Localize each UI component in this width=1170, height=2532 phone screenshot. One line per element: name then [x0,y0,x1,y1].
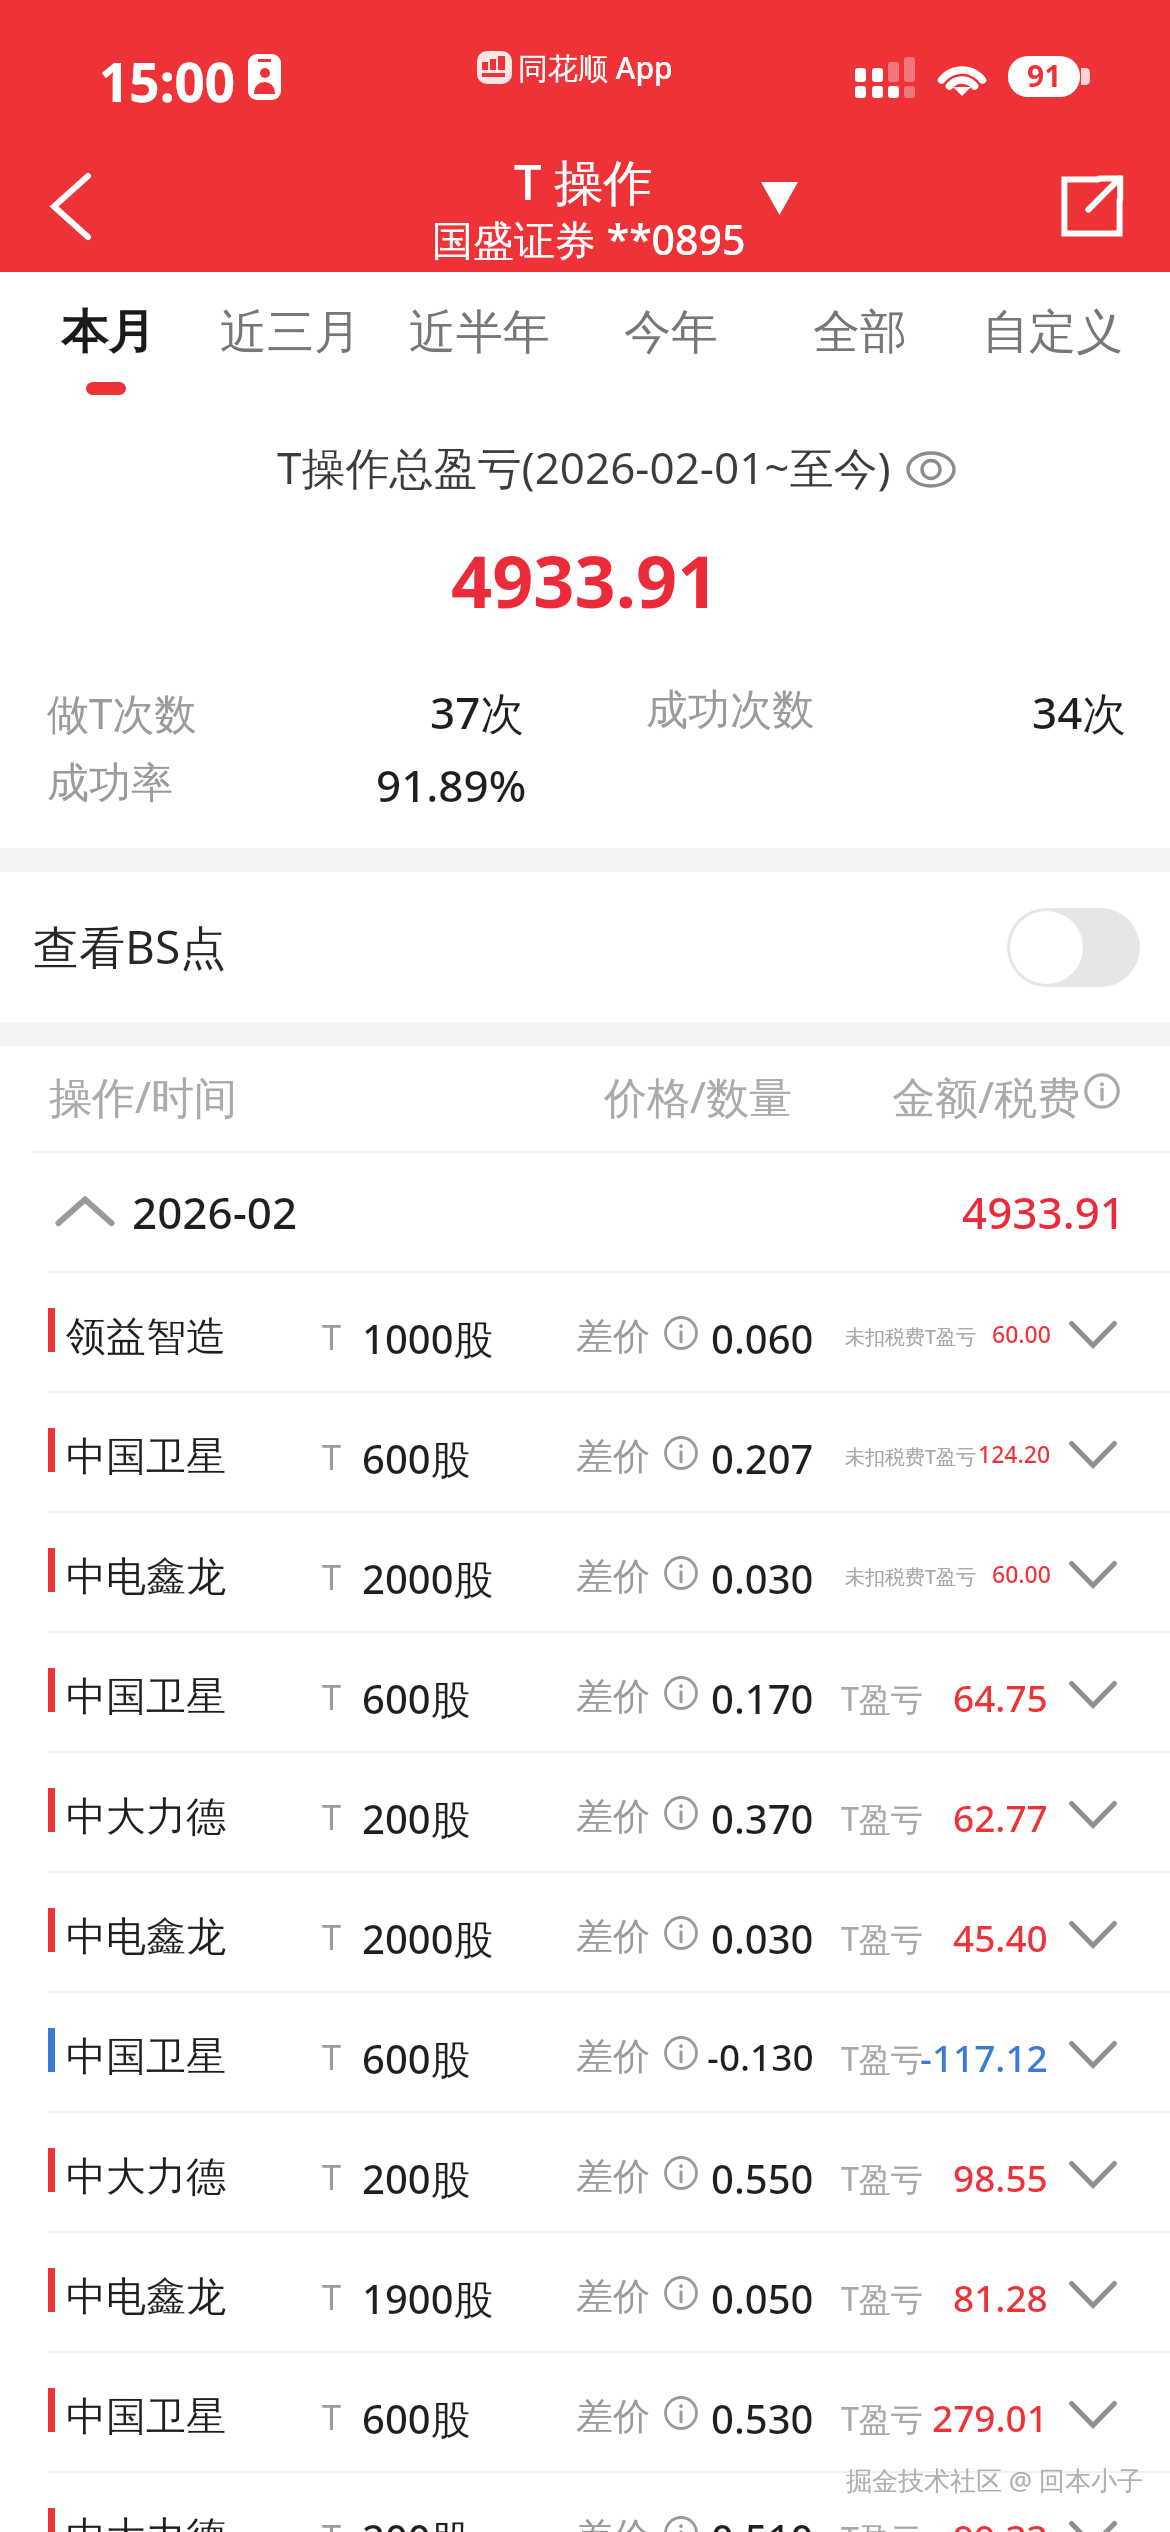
button[interactable]: T 操作 [420,140,810,252]
button[interactable]: 本月 [41,272,175,384]
staticText: 掘金技术社区 @ 回本小子 [846,2462,1143,2498]
staticText: 差价 [576,1673,650,1720]
staticText: 中电鑫龙 [66,2271,226,2321]
staticText: 近三月 [220,303,361,362]
staticText: T [322,1554,341,1600]
staticText: 差价 [576,1913,650,1960]
staticText: 15:00 [99,45,236,117]
staticText: 中大力德 [66,2151,226,2201]
staticText: 国盛证券 **0895 [432,211,746,267]
button[interactable]: 中电鑫龙 [0,1872,1170,1992]
button[interactable]: 中国卫星 [0,1632,1170,1752]
staticText: 中大力德 [66,2511,226,2532]
staticText: 37次 [430,682,525,742]
staticText: 2026-02 [132,1182,298,1242]
button[interactable]: 查看BS点 [0,872,1170,1022]
staticText: -0.130 [707,2031,814,2081]
staticText: 4933.91 [451,531,719,629]
button[interactable]: Share [1040,158,1144,254]
button[interactable]: 中国卫星 [0,1392,1170,1512]
button[interactable]: Fee info [1064,1053,1140,1129]
staticText: 0.170 [711,1671,814,1725]
staticText: 中大力德 [66,1791,226,1841]
staticText: 查看BS点 [33,915,227,978]
staticText: 未扣税费T盈亏 [845,1443,977,1470]
staticText: T盈亏 [841,1797,923,1841]
staticText: 金额/税费 [892,1067,1080,1126]
staticText: T盈亏 [841,1917,923,1961]
button[interactable]: 中大力德 [0,1752,1170,1872]
staticText: 差价 [576,2513,650,2532]
button[interactable]: 近半年 [389,272,570,384]
staticText: 0.030 [711,1551,814,1605]
staticText: 差价 [576,2033,650,2080]
staticText: 差价 [576,2273,650,2320]
staticText: 81.28 [953,2272,1048,2322]
button[interactable]: 中大力德 [0,2112,1170,2232]
staticText: T盈亏 [841,2277,923,2321]
button[interactable]: 中电鑫龙 [0,1512,1170,1632]
staticText: 近半年 [409,303,550,362]
staticText: 0.207 [711,1431,814,1485]
staticText: 0.370 [711,1791,814,1845]
staticText: 领益智造 [66,1311,226,1361]
staticText: 91 [1027,56,1062,96]
staticText: T [322,2514,341,2532]
staticText: 差价 [576,1433,650,1480]
staticText: 2000股 [362,1911,494,1966]
staticText: T [322,2274,341,2320]
staticText: 200股 [362,2151,471,2206]
staticText: 成功率 [47,757,173,810]
staticText: 64.75 [953,1672,1048,1722]
staticText: T [322,1314,341,1360]
button[interactable]: 近三月 [200,272,381,384]
button[interactable]: Back [16,158,126,254]
staticText: T [322,1794,341,1840]
button[interactable]: Toggle amount visibility [890,429,972,509]
button[interactable]: 全部 [793,272,927,384]
staticText: 今年 [624,303,718,362]
staticText: 中电鑫龙 [66,1551,226,1601]
staticText: 0.530 [711,2391,814,2445]
staticText: 本月 [61,303,155,362]
staticText: 1000股 [362,1311,494,1366]
staticText: 0.510 [711,2511,814,2532]
staticText: 124.20 [978,1438,1051,1469]
staticText: 60.00 [992,1318,1051,1349]
button[interactable]: 2026-02 [0,1156,1170,1272]
button[interactable]: 今年 [604,272,738,384]
staticText: 98.55 [953,2152,1048,2202]
staticText: T盈亏 [841,2037,923,2081]
staticText: 600股 [362,1671,471,1726]
staticText: 1900股 [362,2271,494,2326]
staticText: 中国卫星 [66,1671,226,1721]
staticText: 62.77 [953,1792,1048,1842]
staticText: 0.550 [711,2151,814,2205]
button[interactable]: 中国卫星 [0,1992,1170,2112]
staticText: 自定义 [982,303,1123,362]
staticText: T [322,1914,341,1960]
button[interactable]: 自定义 [962,272,1143,384]
staticText: 45.40 [953,1912,1048,1962]
button[interactable]: 领益智造 [0,1272,1170,1392]
staticText: 差价 [576,1313,650,1360]
staticText: T [322,2394,341,2440]
staticText: 34次 [1032,682,1127,742]
staticText: 600股 [362,2031,471,2086]
staticText: T [322,1674,341,1720]
staticText: T盈亏 [841,2397,923,2441]
button[interactable]: 中大力德 [0,2472,1170,2532]
staticText: T盈亏 [841,1677,923,1721]
staticText: 91.89% [376,755,527,815]
staticText: 做T次数 [47,684,197,741]
staticText: T 操作 [514,148,653,215]
staticText: 中国卫星 [66,2391,226,2441]
staticText: 差价 [576,1553,650,1600]
staticText: 4933.91 [962,1182,1125,1242]
staticText: 同花顺 App [518,47,673,88]
button[interactable]: 中国卫星 [0,2352,1170,2472]
staticText: T盈亏 [841,2517,923,2532]
button[interactable]: 中电鑫龙 [0,2232,1170,2352]
staticText: 操作/时间 [49,1067,237,1126]
staticText: 中国卫星 [66,1431,226,1481]
